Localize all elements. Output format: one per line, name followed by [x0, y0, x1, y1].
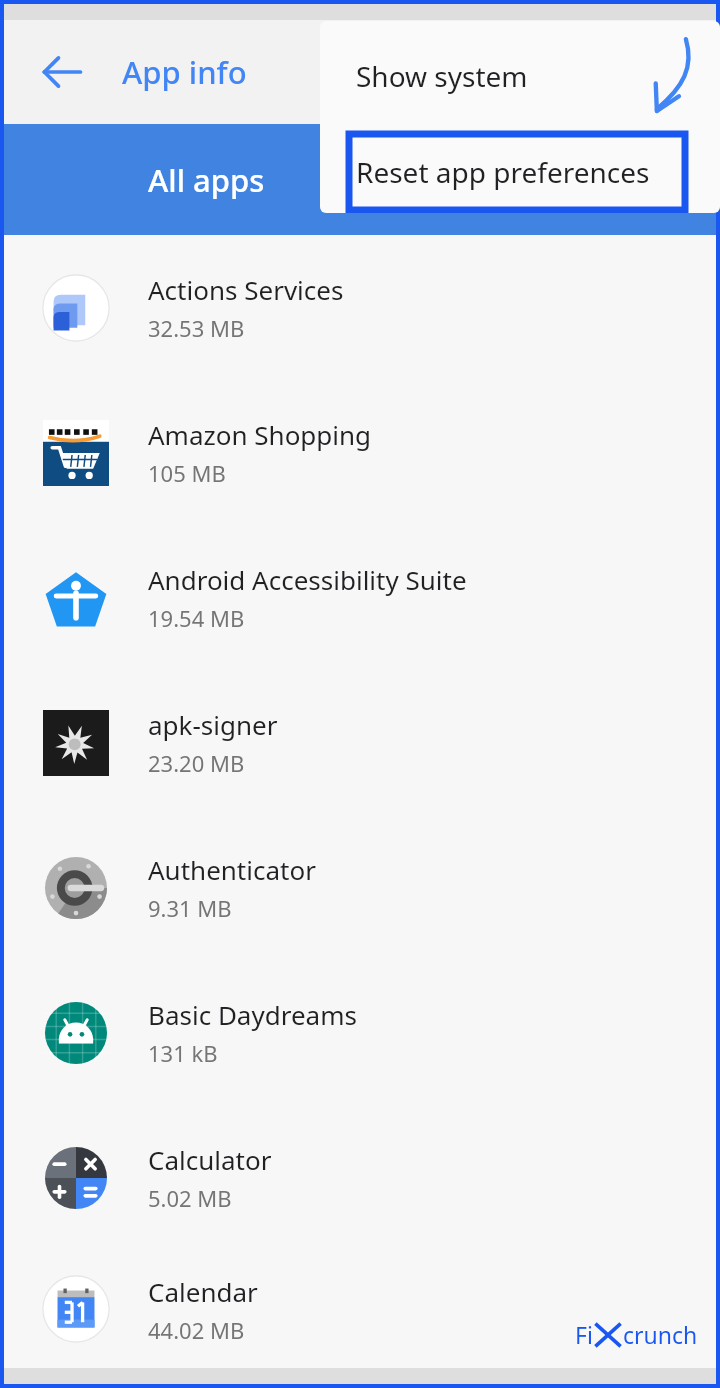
button[interactable]: Basic Daydreams [4, 960, 716, 1105]
staticText: All apps [148, 159, 265, 201]
staticText: App info [122, 51, 247, 93]
staticText: 44.02 MB [148, 1315, 245, 1345]
button[interactable]: Reset app preferences [349, 134, 685, 210]
button[interactable]: Calendar [4, 1250, 716, 1368]
button[interactable]: Authenticator [4, 815, 716, 960]
button[interactable]: Show system [320, 21, 720, 131]
staticText: 105 MB [148, 458, 226, 488]
staticText: 5.02 MB [148, 1183, 232, 1213]
staticText: apk-signer [148, 707, 278, 742]
staticText: Calculator [148, 1142, 272, 1177]
staticText: 9.31 MB [148, 893, 232, 923]
staticText: 23.20 MB [148, 748, 245, 778]
button[interactable]: Actions Services [4, 235, 716, 380]
staticText: Amazon Shopping [148, 417, 372, 452]
staticText: Authenticator [148, 852, 316, 887]
staticText: 131 kB [148, 1038, 218, 1068]
button[interactable]: Android Accessibility Suite [4, 525, 716, 670]
staticText: Android Accessibility Suite [148, 562, 467, 597]
button[interactable]: Calculator [4, 1105, 716, 1250]
staticText: 19.54 MB [148, 603, 245, 633]
button[interactable]: apk-signer [4, 670, 716, 815]
staticText: Actions Services [148, 272, 344, 307]
button[interactable]: Amazon Shopping [4, 380, 716, 525]
button[interactable]: All apps [4, 124, 716, 235]
staticText: Calendar [148, 1274, 258, 1309]
staticText: 32.53 MB [148, 313, 245, 343]
staticText: Basic Daydreams [148, 997, 357, 1032]
staticText: Fi [575, 1319, 593, 1350]
staticText: crunch [623, 1319, 698, 1350]
staticText: Reset app preferences [356, 153, 650, 191]
button[interactable]: Back [26, 36, 98, 108]
staticText: Show system [356, 57, 528, 95]
